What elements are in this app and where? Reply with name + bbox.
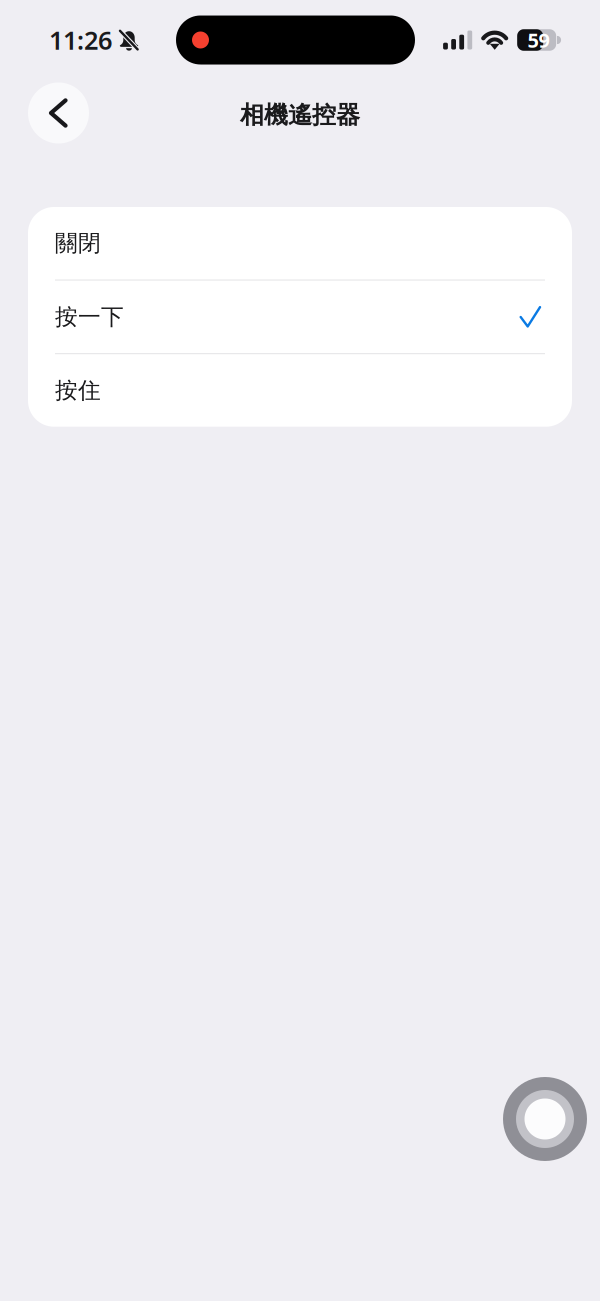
button[interactable]: 按一下 bbox=[28, 281, 572, 353]
button[interactable]: 按住 bbox=[28, 354, 572, 427]
staticText: 11:26 bbox=[49, 23, 112, 57]
staticText: 59 bbox=[527, 27, 549, 53]
staticText: 關閉 bbox=[55, 229, 101, 257]
staticText: 相機遙控器 bbox=[240, 100, 360, 130]
button[interactable]: 關閉 bbox=[28, 207, 572, 279]
button[interactable]: Back bbox=[28, 82, 89, 143]
staticText: 按住 bbox=[55, 376, 101, 404]
staticText: 按一下 bbox=[55, 303, 124, 331]
button[interactable]: AssistiveTouch bbox=[503, 1077, 587, 1161]
